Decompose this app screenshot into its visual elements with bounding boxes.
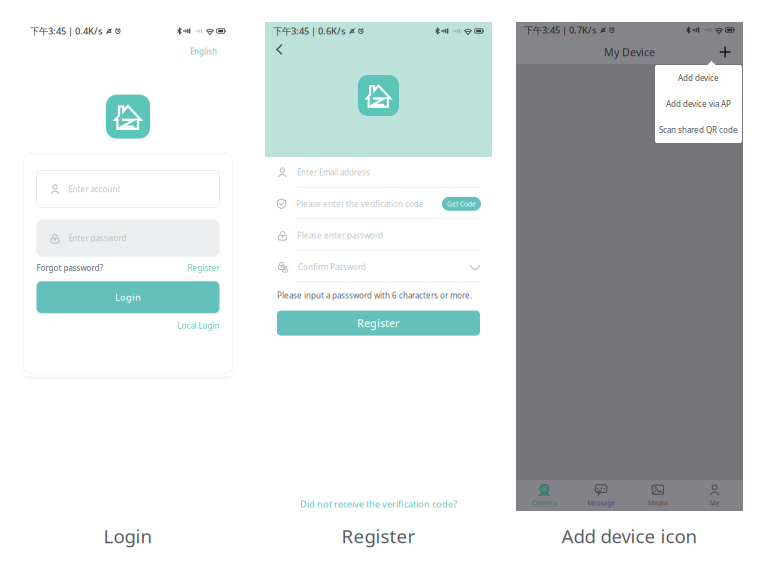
staticText: Forgot password? [36,263,102,273]
staticText: Did not receive the verification code? [300,498,457,510]
staticText: My Device [604,45,655,59]
staticText: Add device [678,73,719,83]
staticText: Add device via AP [666,99,731,109]
button[interactable]: Local Login [177,320,219,331]
button[interactable]: Message [573,480,630,511]
button[interactable]: Login [36,281,219,313]
staticText: Me [710,499,720,507]
staticText: Login [103,524,152,548]
staticText: English [190,46,217,57]
button[interactable]: English [186,44,221,59]
button[interactable]: Me [686,480,743,511]
button[interactable]: Forgot password? [36,263,102,273]
button[interactable]: Add device [655,65,742,91]
staticText: 下午3:45 | 0.7K/s [524,24,597,36]
staticText: Message [587,499,615,507]
button[interactable]: Back [270,40,289,59]
staticText: Register [187,263,219,273]
staticText: Please enter password [297,230,383,241]
staticText: Enter password [68,233,126,243]
staticText: 下午3:45 | 0.4K/s [30,25,103,37]
staticText: Scan shared QR code [659,125,738,135]
staticText: Camera [532,499,557,507]
button[interactable]: Camera [516,480,573,511]
staticText: Login [115,291,141,303]
staticText: Register [341,524,415,548]
staticText: Add device icon [561,524,697,548]
button[interactable]: Add device [714,41,736,63]
button[interactable]: Register [277,311,480,336]
staticText: Media [648,499,668,507]
staticText: Please enter the verification code [296,198,424,209]
button[interactable]: Media [629,480,686,511]
button[interactable]: Scan shared QR code [655,117,742,143]
button[interactable]: Register [187,263,219,273]
staticText: Enter Email address [297,167,370,178]
staticText: 下午3:45 | 0.6K/s [273,25,346,37]
staticText: Local Login [177,320,219,331]
button[interactable]: Add device via AP [655,91,742,117]
staticText: Please input a passsword with 6 characte… [277,290,472,301]
button[interactable]: Did not receive the verification code? [300,498,457,510]
staticText: Enter account [68,184,120,194]
staticText: Register [357,316,400,330]
button[interactable]: Get Code [442,197,481,211]
staticText: Get Code [447,199,476,208]
staticText: Confirm Password [298,261,366,272]
